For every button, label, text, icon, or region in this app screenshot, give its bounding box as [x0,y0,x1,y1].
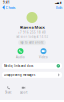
staticText: +7 916 255 18 40 [18,31,46,34]
button[interactable]: Video [36,48,50,59]
button[interactable]: Edit [54,5,64,10]
button[interactable]: Media, links and docs [2,63,62,69]
button[interactable]: Disappearing messages [2,72,62,78]
staticText: ▂▄ ▮ [55,1,61,4]
staticText: Жанна Моск [19,24,44,30]
button[interactable]: Export [16,86,31,94]
staticText: Edit [56,5,62,10]
staticText: Audio [16,55,25,59]
button[interactable]: Audio [13,48,27,59]
staticText: Export [19,91,27,94]
staticText: last seen today at 14:02 [15,35,48,38]
staticText: Media, links and docs [4,64,33,68]
staticText: Share [5,91,12,94]
staticText: Chats [6,5,16,10]
staticText: Disappearing messages [4,73,35,77]
button[interactable]: Share [1,86,16,94]
button[interactable]: Tap to add a note [18,40,46,45]
button[interactable]: Chats [0,5,18,10]
staticText: Tap to add a note [20,41,44,44]
staticText: Video [39,55,48,59]
staticText: 9:41 [3,1,10,4]
